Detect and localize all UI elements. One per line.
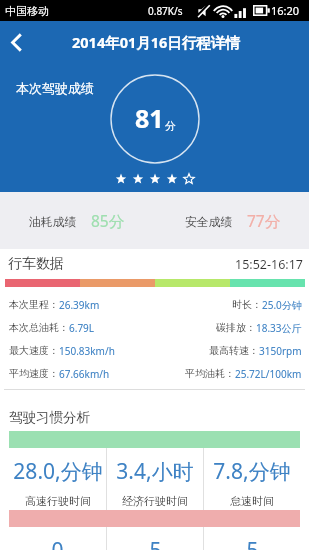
staticText: 时长： [232,298,262,311]
button[interactable]: 5 [107,527,203,550]
staticText: 77分 [247,210,281,231]
staticText: 经济行驶时间 [122,494,188,508]
button[interactable]: Back [2,21,30,63]
staticText: 0 [51,536,64,550]
staticText: 行车数据 [8,255,64,273]
staticText: 26.39km [59,298,100,312]
staticText: 高速行驶时间 [25,494,91,508]
staticText: 本次总油耗： [9,321,69,334]
staticText: 25.72L/100km [235,367,302,381]
staticText: 分 [165,119,176,133]
staticText: 平均油耗： [185,367,235,380]
staticText: 67.66km/h [59,367,110,381]
staticText: 中国移动 [5,4,49,18]
staticText: 最高转速： [209,344,259,357]
staticText: 碳排放： [216,321,256,334]
staticText: 怠速时间 [230,494,274,508]
staticText: 28.0,分钟 [13,457,103,486]
staticText: 5 [246,536,259,550]
staticText: 本次驾驶成绩 [16,80,94,96]
staticText: 6.79L [69,321,95,335]
staticText: 安全成绩 [185,215,233,230]
staticText: 15:52-16:17 [235,256,303,273]
staticText: 16:20 [271,3,300,18]
staticText: 驾驶习惯分析 [9,409,90,426]
staticText: 18.33公斤 [256,321,302,335]
button[interactable]: 7.8,分钟 [204,448,300,510]
button[interactable]: 0 [9,527,106,550]
staticText: 平均速度： [9,367,59,380]
staticText: 85分 [91,210,125,231]
staticText: 25.0分钟 [262,298,302,312]
staticText: 3150rpm [259,344,302,358]
staticText: 7.8,分钟 [213,457,291,486]
staticText: 2014年01月16日行程详情 [72,32,240,52]
button[interactable]: 5 [204,527,300,550]
staticText: 150.83km/h [59,344,115,358]
staticText: 81 [135,101,164,135]
staticText: 本次里程： [9,298,59,311]
staticText: 0.87K/s [148,4,183,18]
staticText: 最大速度： [9,344,59,357]
staticText: 3.4,小时 [116,457,194,486]
button[interactable]: 3.4,小时 [107,448,203,510]
button[interactable]: 28.0,分钟 [9,448,106,510]
staticText: 油耗成绩 [29,215,77,230]
staticText: 5 [149,536,162,550]
